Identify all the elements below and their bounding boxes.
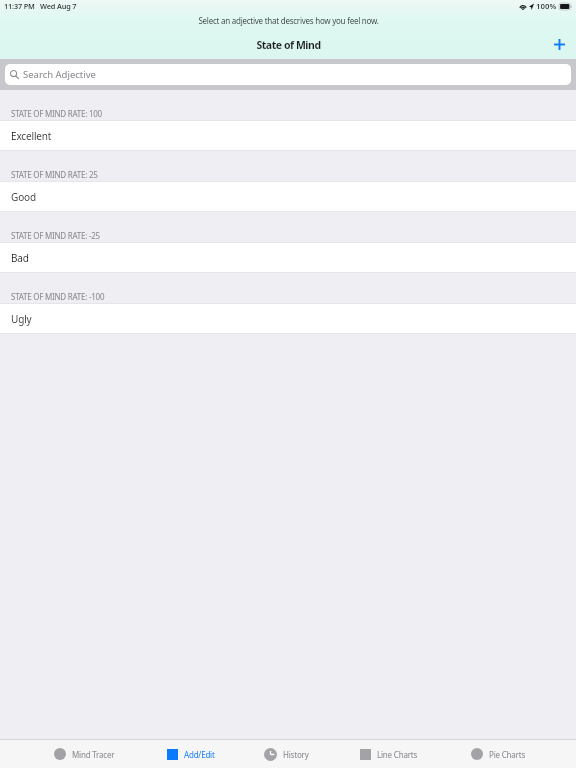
staticText: STATE OF MIND RATE: -100: [11, 291, 105, 302]
staticText: Good: [11, 190, 36, 204]
button[interactable]: History: [264, 740, 309, 768]
staticText: Add/Edit: [184, 749, 215, 760]
button[interactable]: Pie Charts: [471, 740, 526, 768]
button[interactable]: Good: [0, 181, 576, 212]
staticText: History: [283, 749, 309, 760]
staticText: Search Adjective: [23, 68, 96, 81]
button[interactable]: Add: [547, 32, 571, 56]
staticText: Pie Charts: [489, 749, 526, 760]
button[interactable]: Search Adjective: [5, 64, 571, 85]
staticText: Excellent: [11, 129, 52, 143]
button[interactable]: Line Charts: [360, 740, 418, 768]
button[interactable]: Add/Edit: [167, 740, 215, 768]
staticText: STATE OF MIND RATE: 25: [11, 169, 98, 180]
button[interactable]: Bad: [0, 242, 576, 273]
staticText: Mind Tracer: [72, 749, 115, 760]
staticText: STATE OF MIND RATE: -25: [11, 230, 100, 241]
staticText: Ugly: [11, 312, 32, 326]
staticText: State of Mind: [256, 38, 321, 52]
button[interactable]: Mind Tracer: [54, 740, 115, 768]
staticText: Bad: [11, 251, 29, 265]
staticText: Select an adjective that descrives how y…: [198, 15, 379, 26]
staticText: 100%: [536, 1, 557, 12]
staticText: 11:37 PM: [4, 1, 35, 11]
staticText: STATE OF MIND RATE: 100: [11, 108, 102, 119]
staticText: Wed Aug 7: [40, 1, 77, 11]
button[interactable]: Ugly: [0, 303, 576, 334]
button[interactable]: Excellent: [0, 120, 576, 151]
staticText: Line Charts: [377, 749, 418, 760]
